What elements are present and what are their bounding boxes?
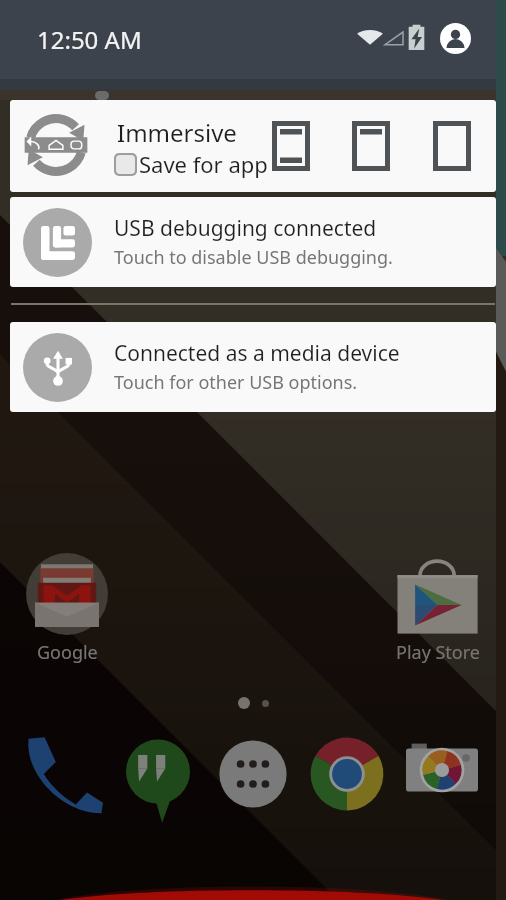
- staticText: Save for app: [139, 149, 268, 179]
- button[interactable]: Immersive: [10, 100, 496, 192]
- button[interactable]: Hangouts: [118, 734, 198, 814]
- staticText: Play Store: [396, 640, 480, 665]
- staticText: Connected as a media device: [114, 339, 400, 368]
- button[interactable]: Connected as a media device: [10, 322, 496, 412]
- button[interactable]: All apps: [213, 734, 293, 814]
- staticText: USB debugging connected: [114, 214, 377, 243]
- button[interactable]: Camera: [402, 734, 482, 814]
- button[interactable]: Play Store: [393, 549, 483, 639]
- staticText: 12:50 AM: [37, 23, 142, 56]
- button[interactable]: Immersive mode style: [263, 111, 319, 181]
- staticText: Touch for other USB options.: [114, 370, 358, 395]
- staticText: Touch to disable USB debugging.: [114, 245, 393, 270]
- button[interactable]: Immersive mode style: [343, 111, 399, 181]
- button[interactable]: Phone: [23, 734, 103, 814]
- button[interactable]: Chrome: [307, 734, 387, 814]
- staticText: Google: [37, 640, 98, 665]
- button[interactable]: Save for app: [116, 155, 135, 174]
- button[interactable]: Immersive mode style: [424, 111, 480, 181]
- staticText: Immersive: [117, 116, 237, 149]
- button[interactable]: USB debugging connected: [10, 197, 496, 287]
- button[interactable]: Google folder: [22, 549, 112, 639]
